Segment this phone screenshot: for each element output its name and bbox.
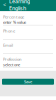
staticText: Learning English: [9, 0, 30, 12]
staticText: enter % value: [3, 20, 26, 25]
staticText: select one: [3, 62, 20, 67]
staticText: Phone: [3, 28, 15, 34]
staticText: Percentage: [3, 14, 24, 19]
staticText: Profession: [3, 57, 22, 62]
staticText: <: [3, 1, 6, 8]
staticText: Email: [3, 42, 13, 48]
button[interactable]: Save: [2, 79, 54, 85]
staticText: Save: [24, 79, 32, 84]
